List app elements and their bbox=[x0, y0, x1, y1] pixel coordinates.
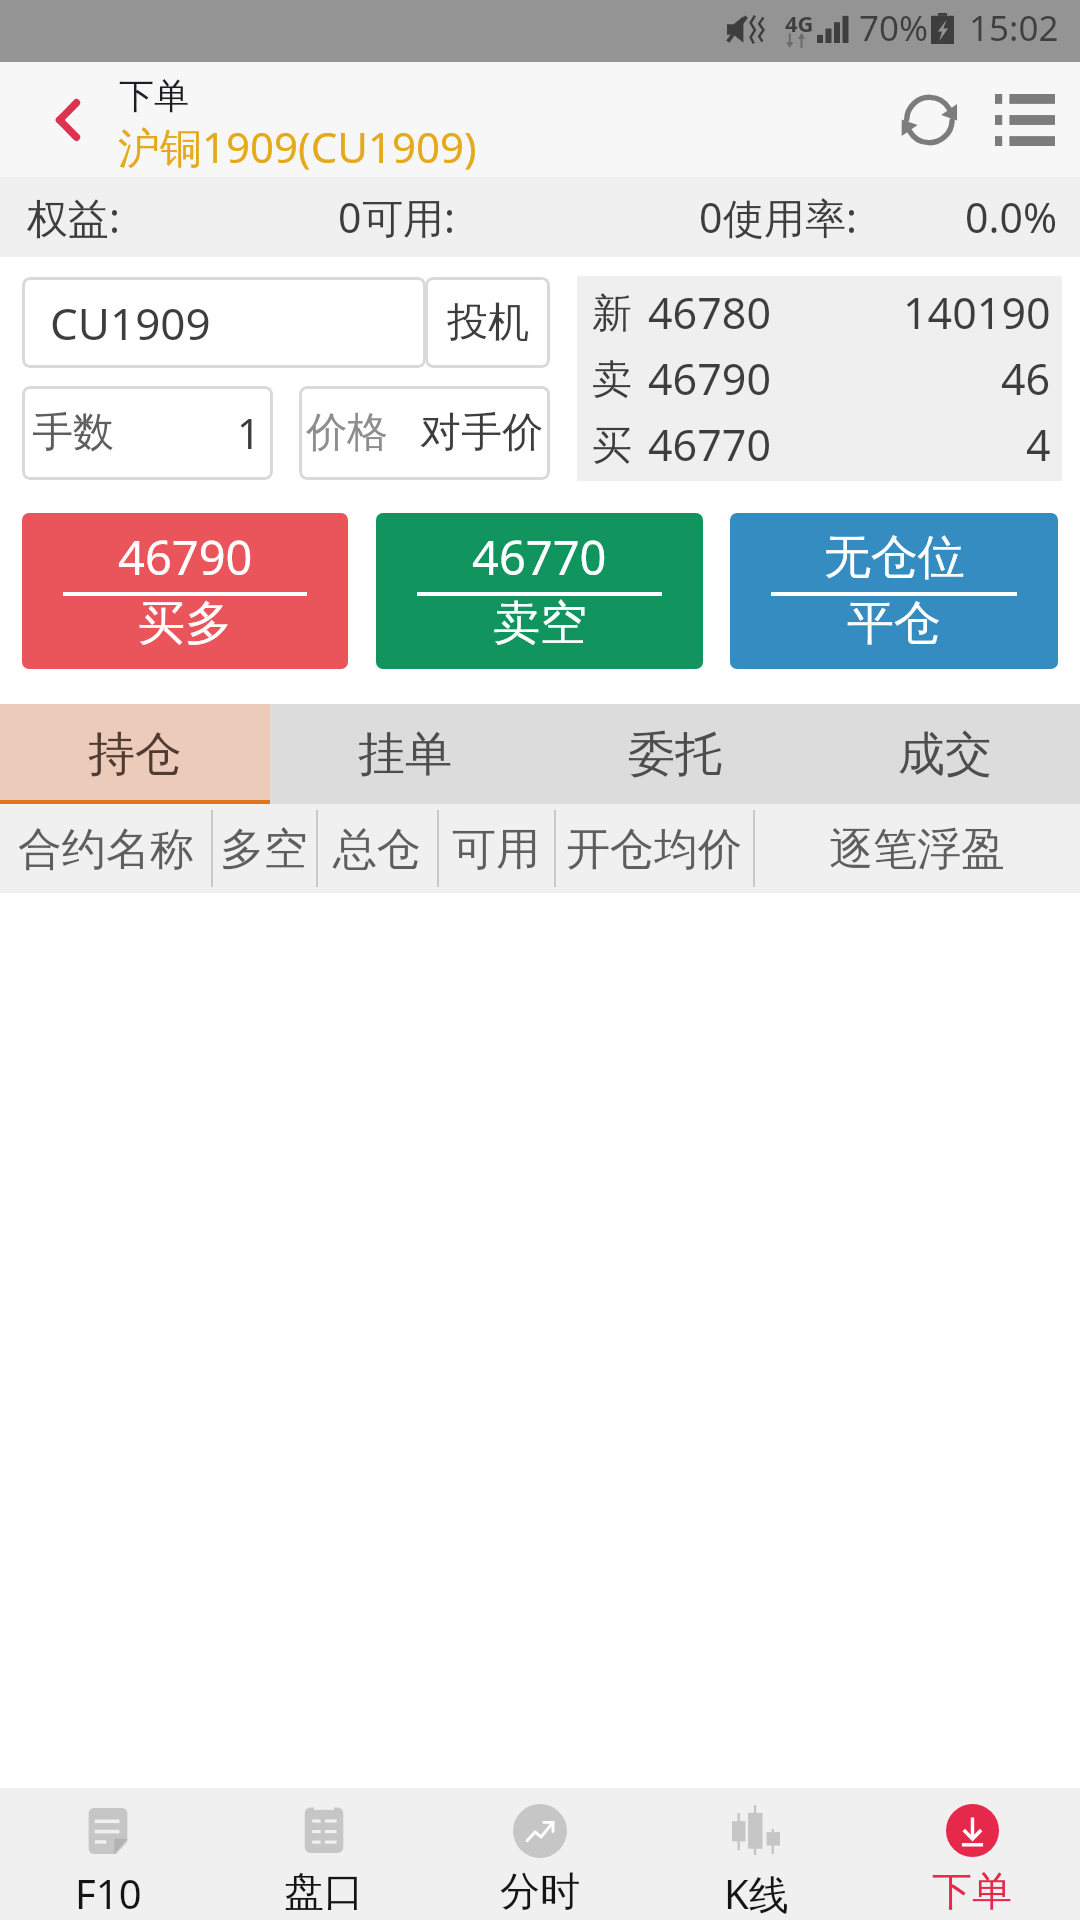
staticText: 投机 bbox=[447, 297, 529, 349]
button[interactable]: 成交 bbox=[810, 704, 1080, 804]
button[interactable]: Refresh bbox=[884, 62, 978, 177]
staticText: 下单 bbox=[932, 1866, 1012, 1916]
button[interactable]: 投机 bbox=[425, 277, 550, 368]
staticText: CU1909 bbox=[50, 293, 211, 353]
staticText: 手数 bbox=[32, 407, 114, 459]
staticText: 逐笔浮盈 bbox=[829, 822, 1005, 877]
staticText: 挂单 bbox=[358, 725, 452, 784]
staticText: 委托 bbox=[628, 725, 722, 784]
staticText: 平仓 bbox=[847, 594, 941, 653]
staticText: 无仓位 bbox=[824, 528, 965, 587]
button[interactable]: 持仓 bbox=[0, 704, 270, 804]
staticText: 4G bbox=[785, 8, 814, 38]
staticText: 140190 bbox=[903, 283, 1051, 342]
staticText: 70% bbox=[859, 4, 929, 52]
staticText: 新 bbox=[592, 288, 632, 338]
staticText: 持仓 bbox=[88, 725, 182, 784]
staticText: 多空 bbox=[220, 822, 308, 877]
staticText: 46790 bbox=[118, 525, 253, 589]
button[interactable]: K线 bbox=[648, 1788, 864, 1920]
staticText: 0 bbox=[338, 189, 362, 245]
staticText: 沪铜1909(CU1909) bbox=[118, 118, 477, 175]
staticText: 价格 bbox=[306, 407, 388, 459]
staticText: 4 bbox=[1026, 415, 1051, 474]
button[interactable]: 委托 bbox=[540, 704, 810, 804]
staticText: 分时 bbox=[500, 1866, 580, 1916]
staticText: 可用 bbox=[452, 822, 540, 877]
staticText: 可用: bbox=[362, 189, 455, 245]
button[interactable]: 新 bbox=[577, 276, 1062, 481]
staticText: 卖空 bbox=[493, 594, 587, 653]
staticText: 成交 bbox=[898, 725, 992, 784]
staticText: 使用率: bbox=[723, 189, 857, 245]
staticText: 盘口 bbox=[284, 1866, 364, 1916]
button[interactable]: 下单 bbox=[864, 1788, 1080, 1920]
button[interactable]: 无仓位 bbox=[730, 513, 1058, 669]
staticText: 15:02 bbox=[969, 4, 1059, 52]
staticText: 开仓均价 bbox=[566, 822, 742, 877]
staticText: 0.0% bbox=[965, 189, 1057, 245]
staticText: 买 bbox=[592, 420, 632, 470]
button[interactable]: 分时 bbox=[432, 1788, 648, 1920]
staticText: 买多 bbox=[138, 594, 232, 653]
staticText: 46 bbox=[1001, 349, 1051, 408]
button[interactable]: 46770 bbox=[376, 513, 703, 669]
button[interactable]: 价格 bbox=[299, 386, 550, 480]
button[interactable]: 手数 bbox=[22, 386, 273, 480]
button[interactable]: Back bbox=[16, 62, 120, 177]
button[interactable]: 盘口 bbox=[216, 1788, 432, 1920]
staticText: 46790 bbox=[648, 349, 771, 408]
button[interactable]: 挂单 bbox=[270, 704, 540, 804]
staticText: F10 bbox=[75, 1866, 142, 1920]
staticText: 46770 bbox=[472, 525, 607, 589]
staticText: 对手价 bbox=[420, 407, 543, 459]
button[interactable]: Menu bbox=[978, 62, 1072, 177]
staticText: 0 bbox=[699, 189, 723, 245]
staticText: 权益: bbox=[27, 189, 120, 245]
button[interactable]: 46790 bbox=[22, 513, 348, 669]
staticText: 总仓 bbox=[333, 822, 421, 877]
staticText: 下单 bbox=[119, 74, 189, 118]
staticText: 1 bbox=[237, 405, 261, 461]
button[interactable]: CU1909 bbox=[22, 277, 426, 368]
staticText: 合约名称 bbox=[18, 822, 194, 877]
staticText: 46770 bbox=[648, 415, 771, 474]
staticText: K线 bbox=[724, 1866, 789, 1920]
staticText: 卖 bbox=[592, 354, 632, 404]
button[interactable]: F10 bbox=[0, 1788, 216, 1920]
staticText: 46780 bbox=[648, 283, 771, 342]
